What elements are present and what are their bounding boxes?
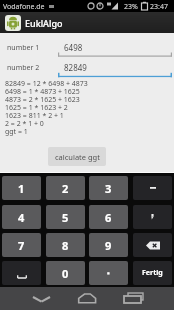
button[interactable]: 1: [2, 176, 41, 200]
button[interactable]: calculate ggt: [48, 147, 106, 166]
button[interactable]: 2: [46, 176, 85, 200]
staticText: 82849: [64, 62, 87, 73]
button[interactable]: [133, 233, 172, 257]
staticText: 82849 = 12 * 6498 + 4873: [5, 79, 88, 89]
staticText: 1: [18, 181, 25, 196]
staticText: 23:47: [150, 2, 168, 12]
button[interactable]: 4: [2, 205, 41, 229]
button[interactable]: 8: [46, 233, 85, 257]
button[interactable]: [2, 261, 41, 285]
button[interactable]: [76, 290, 102, 306]
button[interactable]: 5: [46, 205, 85, 229]
staticText: 0: [62, 266, 69, 281]
staticText: EuklAlgo: [25, 17, 63, 29]
staticText: 7: [18, 238, 25, 253]
staticText: calculate ggt: [55, 152, 100, 162]
button[interactable]: 9: [89, 233, 128, 257]
button[interactable]: [133, 205, 172, 229]
staticText: 6498 = 1 * 4873 + 1625: [5, 87, 80, 97]
staticText: 4: [18, 210, 25, 225]
staticText: number 1: [7, 43, 40, 53]
staticText: Fertig: [142, 268, 163, 278]
staticText: 1623 = 811 * 2 + 1: [5, 111, 64, 121]
staticText: 1625 = 1 * 1623 + 2: [5, 103, 68, 113]
staticText: 23%: [124, 2, 138, 12]
staticText: 2: [62, 181, 69, 196]
button[interactable]: [122, 290, 148, 306]
button[interactable]: 0: [46, 261, 85, 285]
staticText: ggt = 1: [5, 127, 28, 137]
staticText: 2 = 2 * 1 + 0: [5, 119, 44, 129]
button[interactable]: [89, 261, 128, 285]
button[interactable]: [133, 176, 172, 200]
staticText: 8: [62, 238, 69, 253]
staticText: 6: [105, 210, 112, 225]
staticText: Vodafone.de: [3, 2, 45, 12]
button[interactable]: [27, 290, 55, 306]
button[interactable]: 6: [89, 205, 128, 229]
staticText: 4873 = 2 * 1625 + 1623: [5, 95, 80, 105]
button[interactable]: Fertig: [133, 261, 172, 285]
button[interactable]: 3: [89, 176, 128, 200]
staticText: number 2: [7, 63, 40, 73]
staticText: 5: [62, 210, 69, 225]
button[interactable]: 7: [2, 233, 41, 257]
staticText: 9: [105, 238, 112, 253]
staticText: 6498: [64, 42, 83, 53]
staticText: 3: [105, 181, 112, 196]
